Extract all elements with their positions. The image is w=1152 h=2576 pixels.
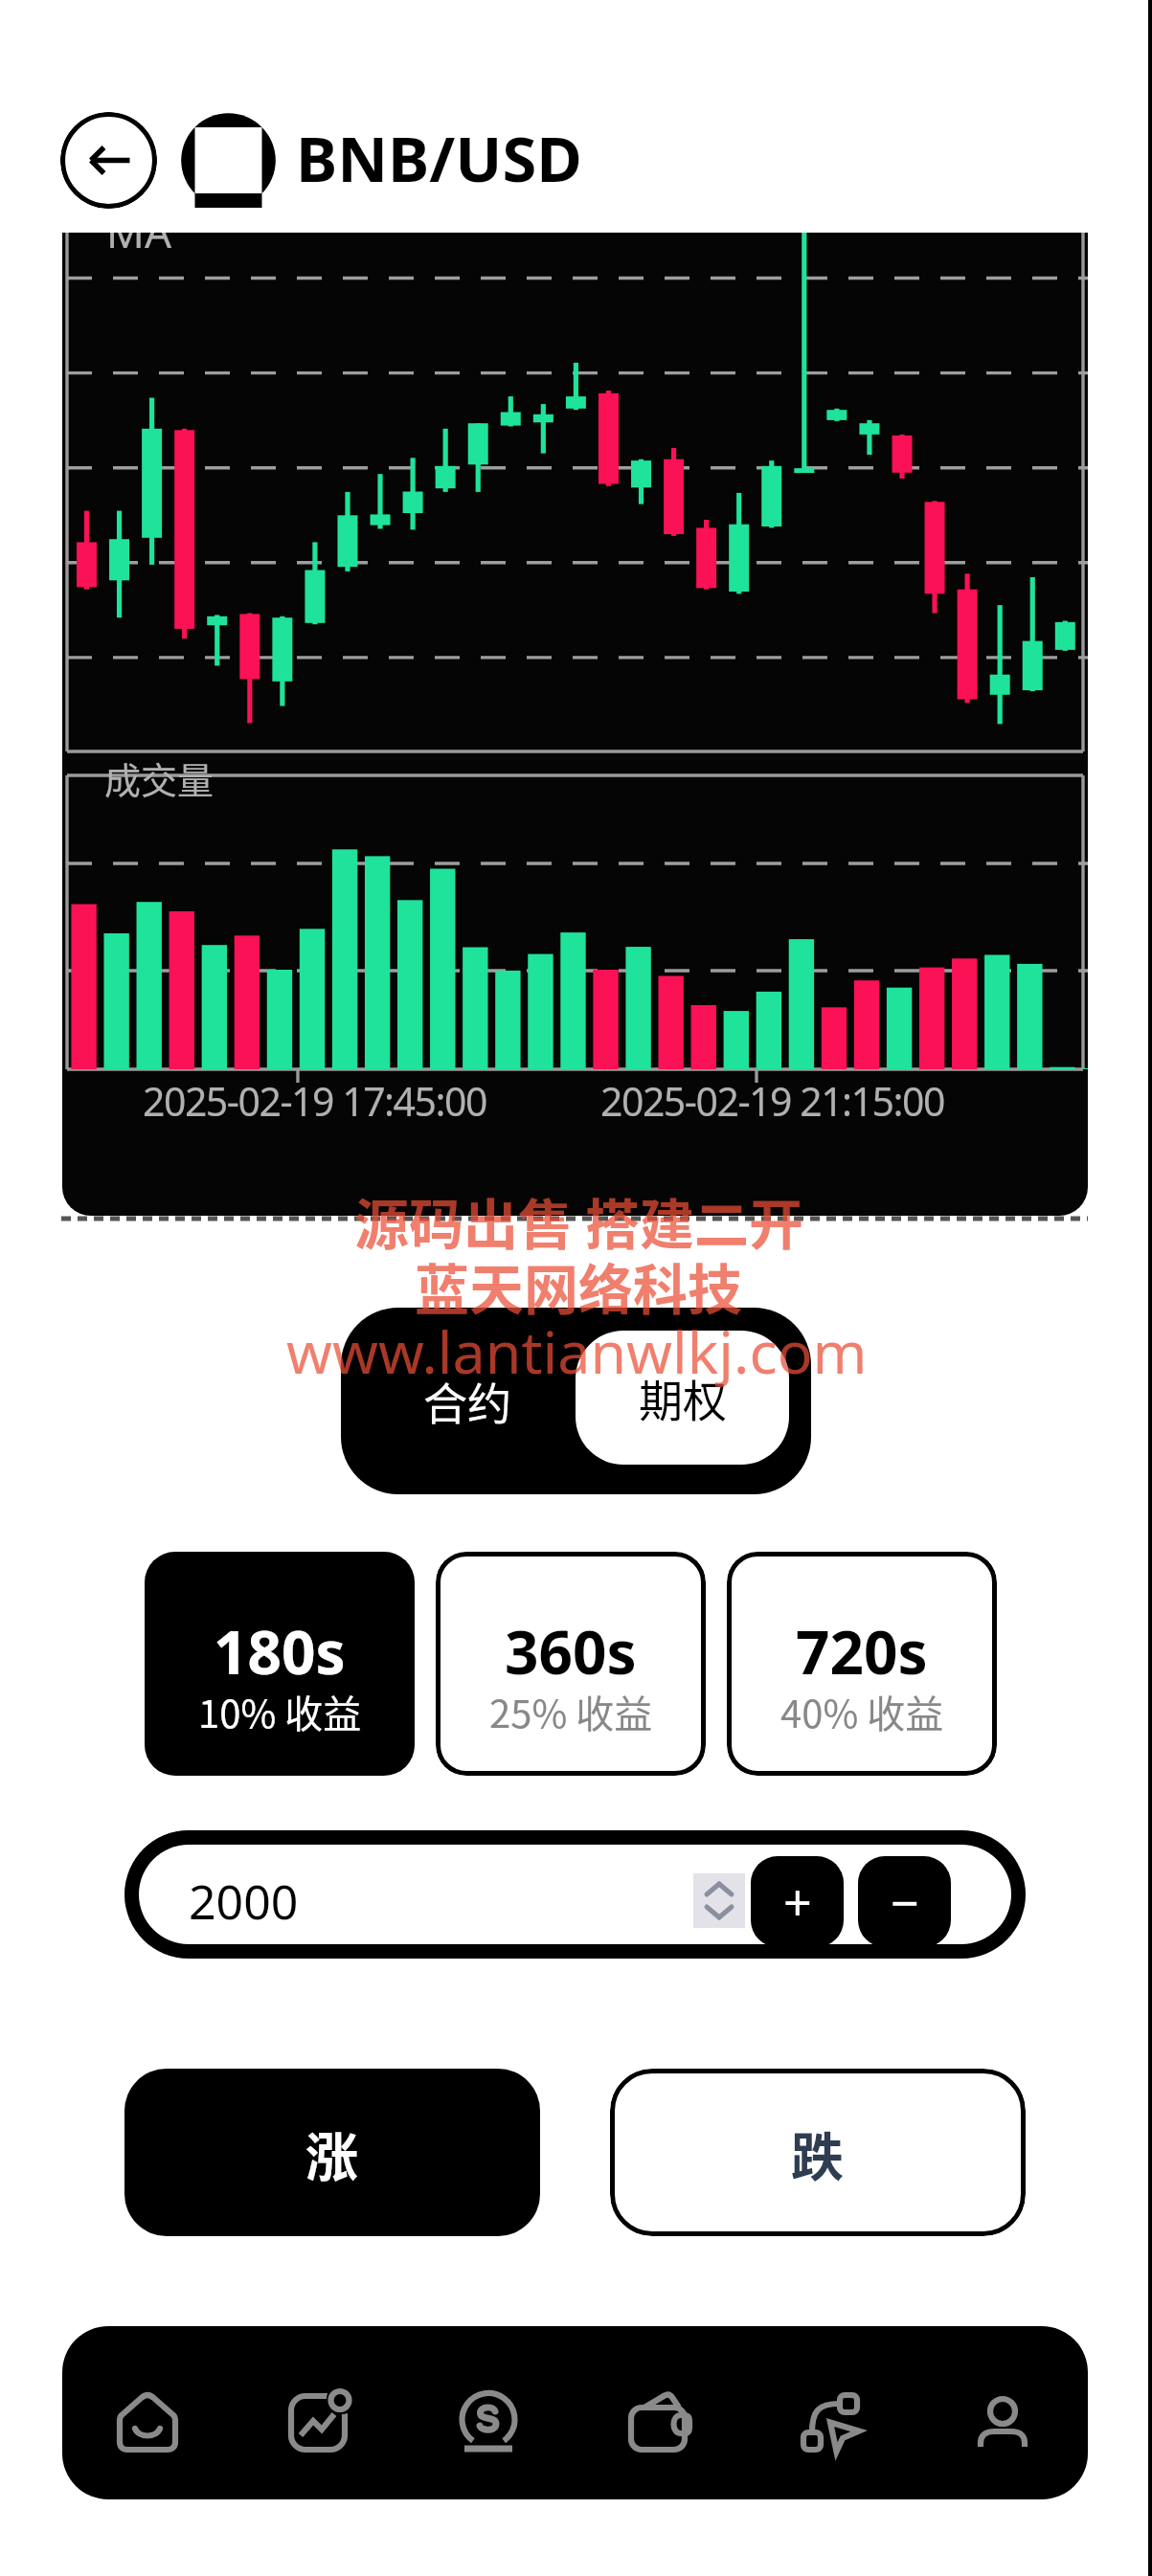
- button[interactable]: 合约: [341, 1308, 576, 1494]
- button[interactable]: Stepper: [693, 1873, 745, 1928]
- staticText: MA: [106, 233, 172, 260]
- staticText: +: [783, 1868, 812, 1936]
- staticText: 蓝天网络科技: [415, 1246, 742, 1326]
- staticText: 成交量: [104, 751, 215, 804]
- button[interactable]: 涨: [124, 2069, 540, 2236]
- staticText: −: [891, 1868, 919, 1936]
- button[interactable]: 2000: [139, 1845, 1011, 1944]
- staticText: 2000: [189, 1869, 299, 1934]
- staticText: 180s: [214, 1611, 346, 1691]
- button[interactable]: 360s: [436, 1552, 706, 1776]
- staticText: 2025-02-19 17:45:00: [143, 1074, 486, 1128]
- staticText: www.lantianwlkj.com: [286, 1311, 868, 1391]
- button[interactable]: Orders: [745, 2326, 916, 2499]
- staticText: 跌: [791, 2115, 845, 2191]
- button[interactable]: Trade: [403, 2326, 574, 2499]
- button[interactable]: 720s: [727, 1552, 997, 1776]
- button[interactable]: Wallet: [574, 2326, 745, 2499]
- staticText: 40% 收益: [780, 1684, 944, 1739]
- staticText: 期权: [639, 1366, 727, 1430]
- staticText: 源码出售 搭建二开: [354, 1181, 803, 1261]
- button[interactable]: +: [751, 1856, 844, 1944]
- staticText: BNB/USD: [296, 116, 582, 201]
- button[interactable]: 180s: [145, 1552, 415, 1776]
- staticText: 2025-02-19 21:15:00: [600, 1074, 944, 1128]
- button[interactable]: −: [858, 1856, 951, 1944]
- button[interactable]: 期权: [576, 1331, 789, 1465]
- button[interactable]: Home: [62, 2326, 233, 2499]
- staticText: 720s: [796, 1611, 928, 1691]
- button[interactable]: Profile: [916, 2326, 1088, 2499]
- button[interactable]: Markets: [233, 2326, 403, 2499]
- staticText: 360s: [505, 1611, 637, 1691]
- staticText: 涨: [305, 2115, 359, 2191]
- button[interactable]: Back: [60, 112, 157, 209]
- staticText: 25% 收益: [489, 1684, 653, 1739]
- staticText: 合约: [423, 1369, 511, 1433]
- staticText: 10% 收益: [198, 1684, 362, 1739]
- button[interactable]: 跌: [610, 2069, 1026, 2236]
